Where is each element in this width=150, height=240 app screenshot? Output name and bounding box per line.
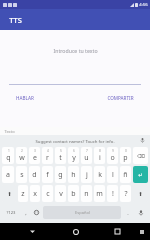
button[interactable]: 9 [107,147,118,164]
button[interactable]: s [16,166,27,183]
staticText: h [71,170,76,180]
button[interactable]: 6 [68,147,79,164]
staticText: j [86,170,88,180]
button[interactable]: 4 [42,147,53,164]
staticText: x [33,189,37,199]
staticText: Español [75,210,90,215]
button[interactable]: 5 [55,147,66,164]
staticText: ñ [123,170,128,180]
staticText: 0 [125,149,127,153]
staticText: s [20,170,24,180]
staticText: f [46,170,49,180]
button[interactable]: z [18,185,28,202]
staticText: 5 [60,149,62,153]
staticText: ⬆ [7,191,12,197]
button[interactable]: COMPARTIR [104,93,137,103]
button[interactable]: Recents [111,225,124,238]
button[interactable]: 3 [29,147,40,164]
button[interactable]: 1 [2,147,14,164]
button[interactable]: c [42,185,53,202]
staticText: , [25,209,27,216]
staticText: k [98,170,102,180]
button[interactable]: 2 [16,147,27,164]
button[interactable]: Voice input [133,204,149,221]
staticText: ! [112,189,114,199]
staticText: c [46,189,50,199]
button[interactable]: HABLAR [13,93,37,103]
staticText: COMPARTIR [107,95,134,101]
button[interactable]: Shift [133,185,148,202]
staticText: z [21,189,25,199]
staticText: d [32,170,37,180]
staticText: TTS [9,15,22,25]
button[interactable]: ! [107,185,118,202]
button[interactable]: Switch keyboard [137,227,146,236]
staticText: 4:56 [139,2,148,8]
staticText: 8 [99,149,101,153]
button[interactable]: k [94,166,105,183]
button[interactable]: Español [43,206,121,219]
button[interactable]: m [94,185,105,202]
staticText: e [33,153,37,163]
staticText: 1 [8,149,10,153]
button[interactable]: h [68,166,79,183]
staticText: 6 [73,149,75,153]
staticText: ? [124,189,128,199]
staticText: m [96,189,103,199]
staticText: g [58,170,63,180]
staticText: u [84,153,89,163]
button[interactable]: 8 [94,147,105,164]
button[interactable]: ?123 [1,204,20,221]
staticText: 2 [21,149,23,153]
button[interactable]: ñ [120,166,131,183]
staticText: . [127,209,129,216]
staticText: y [72,153,76,163]
staticText: HABLAR [16,95,34,101]
button[interactable]: a [2,166,14,183]
staticText: i [99,153,101,163]
button[interactable]: v [55,185,66,202]
button[interactable]: Backspace [133,147,148,164]
button[interactable]: ? [120,185,131,202]
staticText: q [6,153,11,163]
button[interactable]: 7 [81,147,92,164]
staticText: l [112,170,114,180]
staticText: w [19,153,25,163]
button[interactable]: Keyboard options [138,136,147,145]
staticText: Suggest contact names? Touch for info. [35,138,115,144]
button[interactable]: d [29,166,40,183]
staticText: v [59,189,63,199]
button[interactable]: f [42,166,53,183]
button[interactable]: x [30,185,40,202]
button[interactable]: g [55,166,66,183]
staticText: r [46,153,49,163]
button[interactable]: j [81,166,92,183]
button[interactable]: Comma [20,204,31,221]
staticText: b [71,189,76,199]
button[interactable]: Shift [2,185,16,202]
button[interactable]: 0 [120,147,131,164]
button[interactable]: Emoji [31,204,42,221]
staticText: ⌫ [137,153,145,159]
staticText: 3 [34,149,36,153]
staticText: p [123,153,128,163]
button[interactable]: b [68,185,79,202]
button[interactable]: Back [26,225,39,238]
button[interactable]: l [107,166,118,183]
staticText: o [110,153,115,163]
staticText: n [84,189,89,199]
staticText: Texto [4,129,15,134]
button[interactable]: n [81,185,92,202]
staticText: ↵ [138,172,143,178]
staticText: Introduce tu texto [53,47,98,54]
staticText: 4 [47,149,49,153]
staticText: ?123 [6,210,16,216]
staticText: 7 [86,149,88,153]
staticText: a [6,170,10,180]
button[interactable]: Enter [133,166,148,183]
staticText: 9 [112,149,114,153]
staticText: ⬆ [138,191,143,197]
button[interactable]: Home [69,225,82,238]
staticText: t [59,153,62,163]
